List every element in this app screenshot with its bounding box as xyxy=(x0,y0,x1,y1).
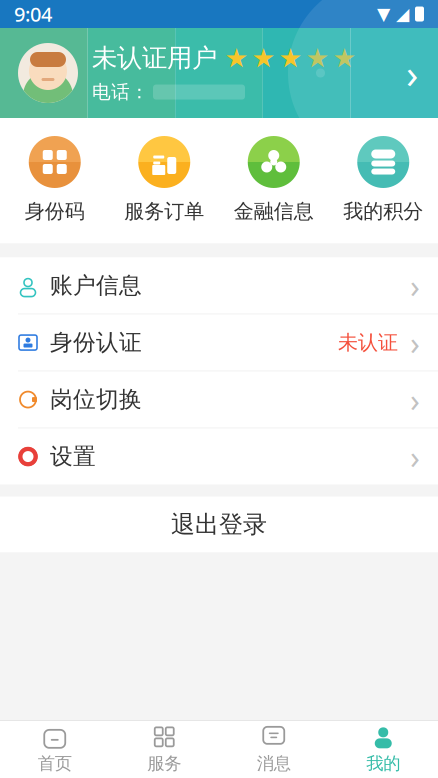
button[interactable]: 首页 xyxy=(0,719,109,778)
button[interactable]: 我的 xyxy=(328,719,438,778)
staticText: ★ xyxy=(278,43,302,73)
staticText: 退出登录 xyxy=(171,510,267,539)
button[interactable]: 账户信息 xyxy=(0,258,438,315)
button[interactable]: 岗位切换 xyxy=(0,372,438,429)
staticText: ★ xyxy=(224,43,248,73)
staticText: 9:04 xyxy=(14,1,52,27)
staticText: ▼ xyxy=(377,4,390,24)
staticText: › xyxy=(410,264,420,307)
staticText: 电话： xyxy=(92,81,149,103)
staticText: › xyxy=(410,435,420,478)
button[interactable]: 身份认证 xyxy=(0,315,438,372)
staticText: 首页 xyxy=(38,753,72,774)
staticText: 服务 xyxy=(147,753,181,774)
button[interactable]: 身份码 xyxy=(0,136,109,224)
button[interactable]: 未认证用户 xyxy=(0,28,438,118)
staticText: 身份码 xyxy=(25,199,85,224)
staticText: 账户信息 xyxy=(50,272,142,299)
staticText: 我的 xyxy=(366,753,400,774)
staticText: 服务订单 xyxy=(124,199,204,224)
button[interactable]: 退出登录 xyxy=(0,497,438,553)
staticText: 未认证用户 xyxy=(92,42,217,74)
button[interactable]: 服务订单 xyxy=(109,136,219,224)
staticText: ★ xyxy=(251,43,275,73)
staticText: › xyxy=(410,321,420,364)
staticText: ◢ xyxy=(396,4,409,24)
staticText: 未认证 xyxy=(338,330,398,355)
button[interactable]: 消息 xyxy=(219,719,328,778)
staticText: › xyxy=(410,378,420,421)
staticText: 设置 xyxy=(50,443,96,470)
staticText: 我的积分 xyxy=(343,199,423,224)
button[interactable]: 我的积分 xyxy=(328,136,438,224)
button[interactable]: 服务 xyxy=(109,719,219,778)
staticText: 岗位切换 xyxy=(50,386,142,413)
staticText: 消息 xyxy=(257,753,291,774)
staticText: ★ xyxy=(332,43,356,73)
button[interactable]: 金融信息 xyxy=(219,136,328,224)
staticText: › xyxy=(406,46,418,99)
staticText: 身份认证 xyxy=(50,329,142,356)
button[interactable]: 设置 xyxy=(0,429,438,485)
staticText: ★ xyxy=(305,43,329,73)
staticText: 金融信息 xyxy=(234,199,314,224)
